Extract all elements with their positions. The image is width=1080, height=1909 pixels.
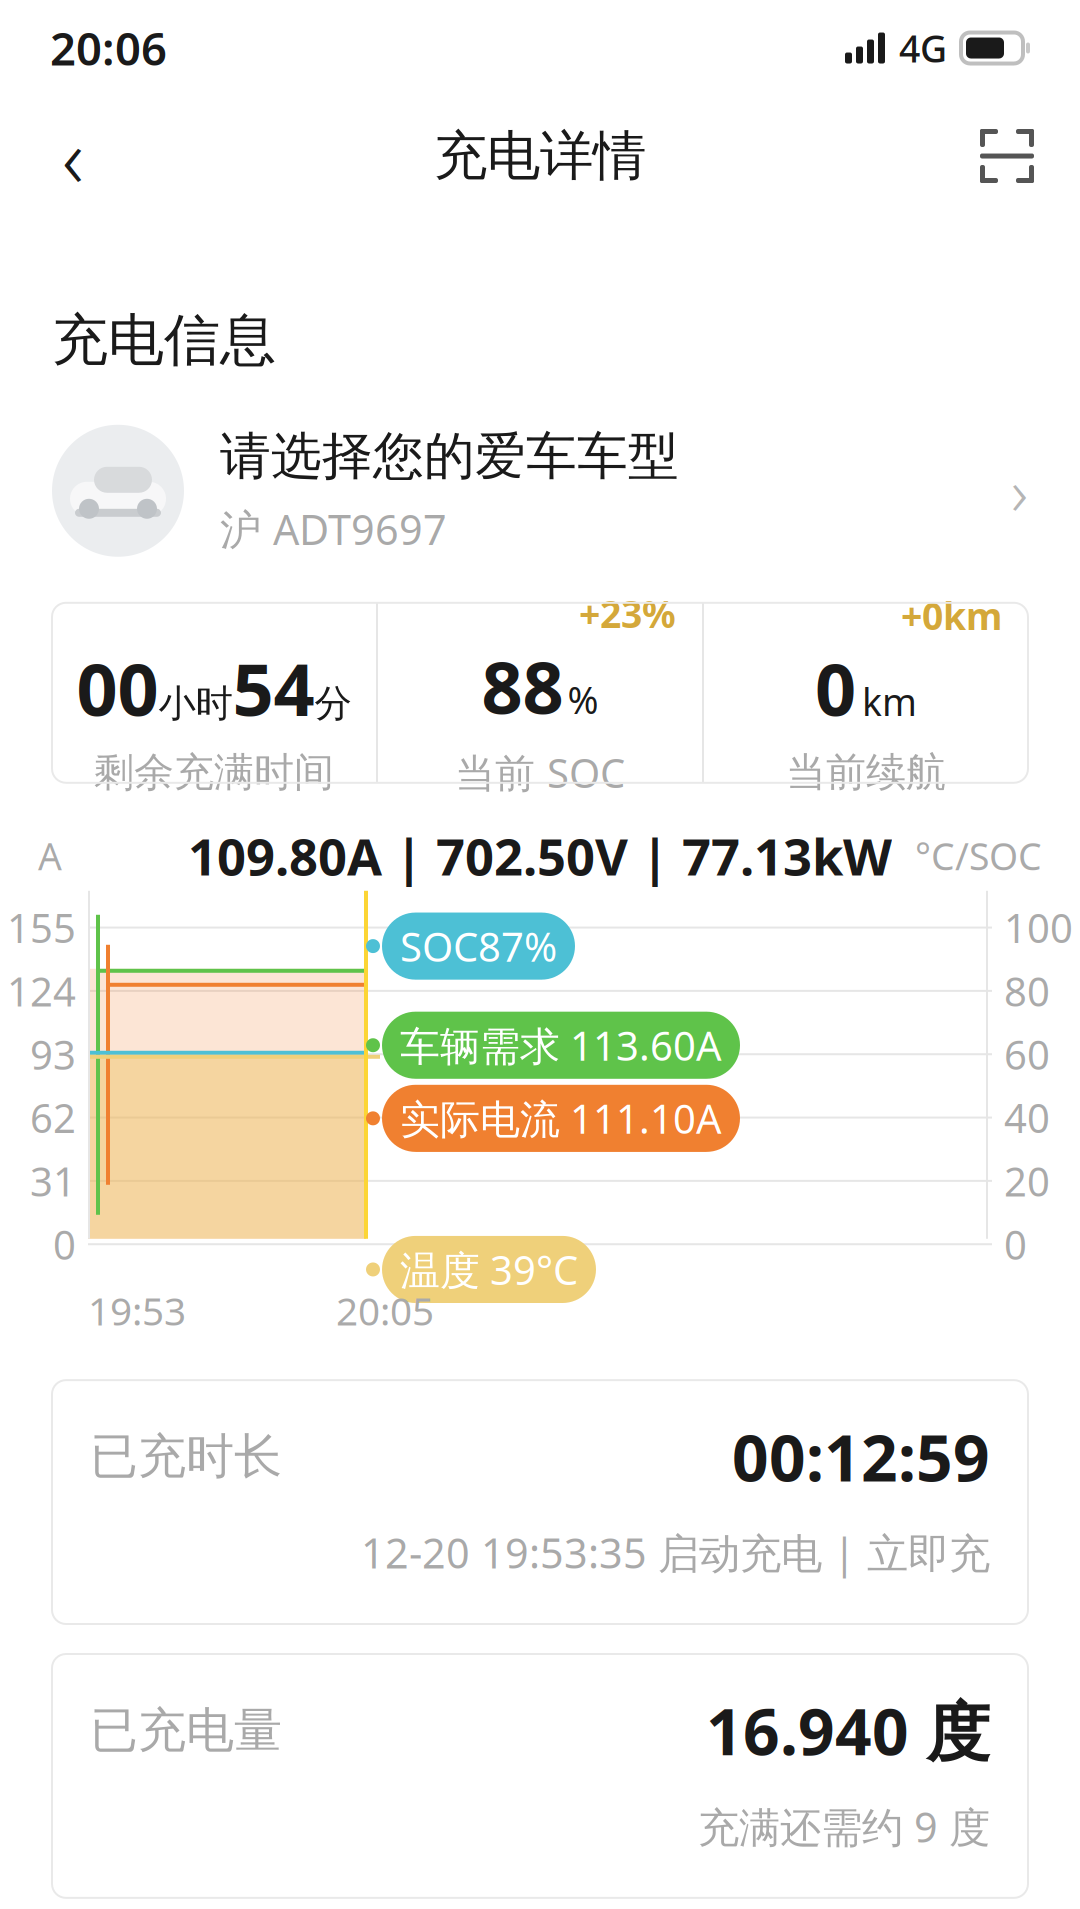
button[interactable]: Scan xyxy=(962,111,1052,201)
staticText: 80 xyxy=(1004,964,1050,1017)
staticText: 00 xyxy=(76,640,158,736)
staticText: +0km xyxy=(901,591,1002,640)
staticText: 20:06 xyxy=(50,18,167,78)
staticText: 已充时长 xyxy=(90,1427,282,1486)
staticText: 充电信息 xyxy=(52,306,276,375)
staticText xyxy=(340,591,350,640)
staticText: 0 xyxy=(1004,1218,1027,1271)
staticText: 小时 xyxy=(158,681,232,726)
staticText: A xyxy=(38,831,62,881)
staticText: 20:05 xyxy=(336,1285,434,1336)
staticText: 车辆需求 113.60A xyxy=(400,1019,722,1072)
staticText: 88 xyxy=(481,638,563,734)
staticText: 54 xyxy=(232,640,314,736)
staticText: ‹ xyxy=(62,101,84,211)
staticText: 20 xyxy=(1004,1154,1050,1207)
staticText: 62 xyxy=(30,1091,76,1144)
button[interactable]: 请选择您的爱车车型 xyxy=(0,375,1080,603)
staticText: 16.940 度 xyxy=(706,1688,990,1773)
staticText: 40 xyxy=(1004,1091,1050,1144)
staticText: 当前续航 xyxy=(786,748,946,797)
staticText: 沪 ADT9697 xyxy=(220,501,447,556)
staticText: 100 xyxy=(1004,901,1073,954)
staticText: › xyxy=(1011,448,1028,533)
button[interactable]: Back xyxy=(28,111,118,201)
staticText: 4G xyxy=(899,23,947,73)
staticText: SOC87% xyxy=(400,919,557,973)
staticText: 155 xyxy=(7,901,76,954)
staticText: 12-20 19:53:35 启动充电 | 立即充 xyxy=(361,1525,990,1580)
staticText: 0 xyxy=(815,640,856,736)
staticText: 0 xyxy=(53,1218,76,1271)
staticText: 温度 39°C xyxy=(400,1243,578,1296)
staticText: +23% xyxy=(579,589,676,638)
staticText: 分 xyxy=(314,681,351,726)
staticText: °C/SOC xyxy=(915,831,1042,881)
staticText: 当前 SOC xyxy=(455,746,625,799)
staticText: 剩余充满时间 xyxy=(94,748,334,797)
staticText: 00:12:59 xyxy=(732,1414,990,1499)
staticText: 60 xyxy=(1004,1028,1050,1081)
staticText: % xyxy=(567,675,598,724)
staticText: 31 xyxy=(30,1154,76,1207)
staticText: 109.80A | 702.50V | 77.13kW xyxy=(188,822,892,889)
staticText: km xyxy=(862,677,917,726)
staticText: 充电详情 xyxy=(434,123,646,189)
staticText: 93 xyxy=(30,1028,76,1081)
staticText: 已充电量 xyxy=(90,1701,282,1760)
staticText: 请选择您的爱车车型 xyxy=(220,425,679,487)
staticText: 充满还需约 9 度 xyxy=(698,1799,990,1854)
staticText: 实际电流 111.10A xyxy=(400,1092,722,1145)
staticText: 124 xyxy=(7,964,76,1017)
staticText: 19:53 xyxy=(88,1285,186,1336)
